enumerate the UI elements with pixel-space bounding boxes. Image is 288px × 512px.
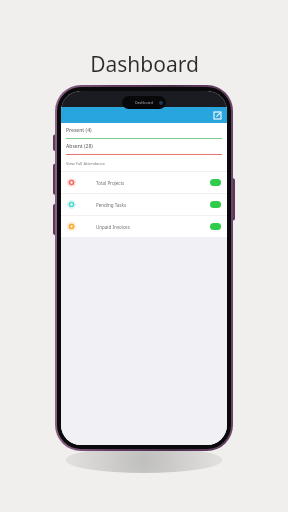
button[interactable]: View Full Attendance bbox=[61, 155, 227, 171]
button[interactable]: Present (4) bbox=[61, 123, 227, 139]
button[interactable]: Unpaid Invoices bbox=[61, 216, 227, 237]
staticText: Dashboard bbox=[90, 50, 199, 79]
staticText: Pending Tasks bbox=[96, 202, 127, 208]
button[interactable]: Pending Tasks bbox=[61, 194, 227, 215]
staticText: Absent (28) bbox=[66, 143, 93, 150]
staticText: View Full Attendance bbox=[66, 161, 105, 166]
button[interactable]: Absent (28) bbox=[61, 139, 227, 155]
staticText: Unpaid Invoices bbox=[96, 224, 130, 230]
button[interactable]: Edit bbox=[213, 111, 222, 120]
staticText: Dashboard bbox=[135, 100, 154, 105]
staticText: Total Projects bbox=[96, 180, 125, 186]
button[interactable]: Total Projects bbox=[61, 172, 227, 193]
staticText: Present (4) bbox=[66, 127, 92, 134]
